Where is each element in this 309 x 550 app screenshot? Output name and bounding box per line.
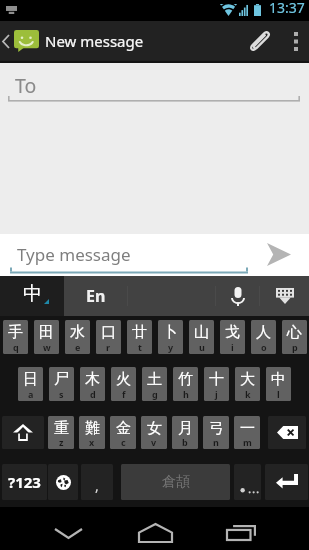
staticText: 日 (23, 370, 38, 389)
button[interactable]: 倉頡 (121, 464, 230, 500)
staticText: 倉頡 (162, 473, 190, 491)
staticText: s (59, 388, 64, 400)
staticText: e (75, 341, 81, 353)
staticText: 難 (85, 419, 100, 438)
button[interactable]: 中 (0, 276, 64, 316)
staticText: 心 (287, 323, 302, 342)
staticText: 金 (116, 419, 131, 438)
staticText: 女 (147, 419, 162, 438)
staticText: i (231, 341, 234, 353)
staticText: c (121, 436, 126, 448)
staticText: 大 (240, 370, 255, 389)
button[interactable]: 手 (3, 320, 28, 354)
button[interactable]: To (0, 63, 309, 108)
staticText: 月 (178, 419, 193, 438)
staticText: a (28, 388, 34, 400)
button[interactable]: 日 (18, 367, 43, 401)
button[interactable]: Change language (48, 464, 78, 500)
button[interactable]: 戈 (220, 320, 245, 354)
staticText: k (245, 388, 251, 400)
staticText: y (168, 341, 174, 353)
button[interactable]: 竹 (173, 367, 198, 401)
staticText: 水 (70, 323, 85, 342)
staticText: 口 (101, 323, 116, 342)
button[interactable]: Recent apps (201, 507, 281, 550)
button[interactable]: 尸 (49, 367, 74, 401)
button[interactable]: 廿 (127, 320, 152, 354)
button[interactable]: 土 (142, 367, 167, 401)
staticText: 卜 (163, 323, 178, 342)
staticText: j (215, 388, 218, 400)
staticText: 重 (54, 419, 69, 438)
button[interactable]: ?123 (2, 464, 47, 500)
button[interactable]: 水 (65, 320, 90, 354)
staticText: 田 (39, 323, 54, 342)
button[interactable]: 人 (251, 320, 276, 354)
button[interactable] (234, 464, 261, 500)
button[interactable]: 十 (204, 367, 229, 401)
staticText: x (89, 436, 95, 448)
staticText: r (106, 341, 111, 353)
staticText: n (213, 436, 219, 448)
button[interactable]: Enter (265, 464, 308, 500)
staticText: ?123 (8, 472, 41, 492)
button[interactable]: 金 (110, 416, 136, 449)
staticText: 土 (147, 370, 162, 389)
staticText: 一 (240, 419, 255, 438)
button[interactable]: 難 (79, 416, 105, 449)
staticText: 人 (256, 323, 271, 342)
staticText: 戈 (225, 323, 240, 342)
staticText: 木 (85, 370, 100, 389)
staticText: New message (45, 31, 144, 51)
staticText: p (292, 341, 298, 353)
button[interactable]: New message (0, 21, 144, 61)
button[interactable]: Shift (2, 416, 44, 449)
button[interactable]: 月 (172, 416, 198, 449)
staticText: u (199, 341, 205, 353)
button[interactable]: Hide keyboard (260, 276, 309, 316)
button[interactable]: Attach (236, 21, 283, 61)
button[interactable]: 女 (141, 416, 167, 449)
staticText: 中 (271, 370, 286, 389)
staticText: 竹 (178, 370, 193, 389)
button[interactable]: Send (249, 234, 309, 276)
button[interactable]: 火 (111, 367, 136, 401)
button[interactable]: 重 (48, 416, 74, 449)
staticText: m (243, 436, 252, 448)
staticText: 13:37 (269, 0, 305, 17)
staticText: Type message (17, 243, 131, 266)
staticText: 手 (8, 323, 23, 342)
staticText: l (277, 388, 280, 400)
button[interactable]: Type message (0, 234, 249, 276)
staticText: 山 (194, 323, 209, 342)
button[interactable]: Back (0, 507, 103, 550)
button[interactable]: 田 (34, 320, 59, 354)
button[interactable]: More options (283, 21, 309, 61)
button[interactable]: 卜 (158, 320, 183, 354)
staticText: t (138, 341, 142, 353)
staticText: 尸 (54, 370, 69, 389)
button[interactable]: , (81, 464, 113, 500)
staticText: v (151, 436, 157, 448)
staticText: f (122, 388, 126, 400)
staticText: o (261, 341, 267, 353)
staticText: q (13, 341, 19, 353)
staticText: 中 (23, 282, 42, 306)
staticText: g (152, 388, 158, 400)
staticText: 廿 (132, 323, 147, 342)
button[interactable]: 口 (96, 320, 121, 354)
staticText: To (15, 72, 37, 99)
button[interactable]: 木 (80, 367, 105, 401)
button[interactable]: 一 (234, 416, 260, 449)
button[interactable]: Voice input (216, 276, 259, 316)
button[interactable]: Backspace (268, 416, 306, 449)
staticText: , (95, 476, 99, 495)
button[interactable]: 山 (189, 320, 214, 354)
button[interactable]: 大 (235, 367, 260, 401)
button[interactable]: En (64, 276, 127, 316)
button[interactable]: 弓 (203, 416, 229, 449)
button[interactable]: 心 (282, 320, 307, 354)
button[interactable]: 中 (266, 367, 291, 401)
button[interactable]: Home (112, 507, 198, 550)
staticText: h (183, 388, 189, 400)
